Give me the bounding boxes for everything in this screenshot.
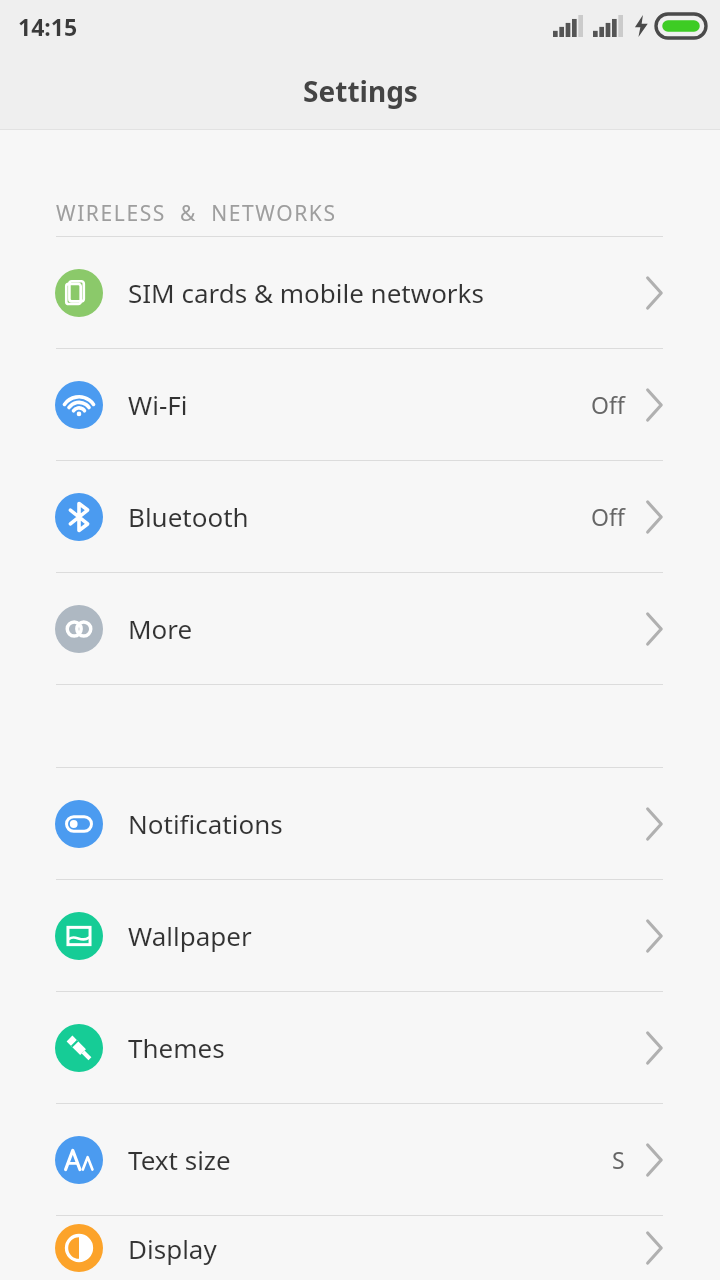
button[interactable]: Bluetooth	[0, 461, 720, 572]
staticText: Themes	[128, 1030, 645, 1065]
other: More	[55, 605, 103, 653]
other: SIM cards	[55, 269, 103, 317]
other: Wallpaper	[55, 912, 103, 960]
button[interactable]: Notifications	[0, 768, 720, 879]
button[interactable]: Display	[0, 1216, 720, 1280]
staticText: Settings	[303, 72, 418, 110]
staticText: 14:15	[18, 11, 78, 42]
button[interactable]: Wi-Fi	[0, 349, 720, 460]
other: Display	[55, 1224, 103, 1272]
staticText: Text size	[128, 1142, 612, 1177]
staticText: Display	[128, 1231, 645, 1266]
staticText: Notifications	[128, 806, 645, 841]
staticText: Off	[591, 501, 625, 532]
button[interactable]: Text size	[0, 1104, 720, 1215]
button[interactable]: More	[0, 573, 720, 684]
staticText: S	[612, 1144, 625, 1175]
other: Bluetooth	[55, 493, 103, 541]
other: Text size	[55, 1136, 103, 1184]
staticText: SIM cards & mobile networks	[128, 275, 645, 310]
other: Themes	[55, 1024, 103, 1072]
staticText: Wallpaper	[128, 918, 645, 953]
button[interactable]: SIM cards	[0, 237, 720, 348]
button[interactable]: Themes	[0, 992, 720, 1103]
other: Notifications	[55, 800, 103, 848]
staticText: Off	[591, 389, 625, 420]
staticText: Bluetooth	[128, 499, 591, 534]
staticText: Wi-Fi	[128, 387, 591, 422]
staticText: WIRELESS & NETWORKS	[56, 199, 337, 228]
button[interactable]: Wallpaper	[0, 880, 720, 991]
staticText: More	[128, 611, 645, 646]
other: Wi-Fi	[55, 381, 103, 429]
